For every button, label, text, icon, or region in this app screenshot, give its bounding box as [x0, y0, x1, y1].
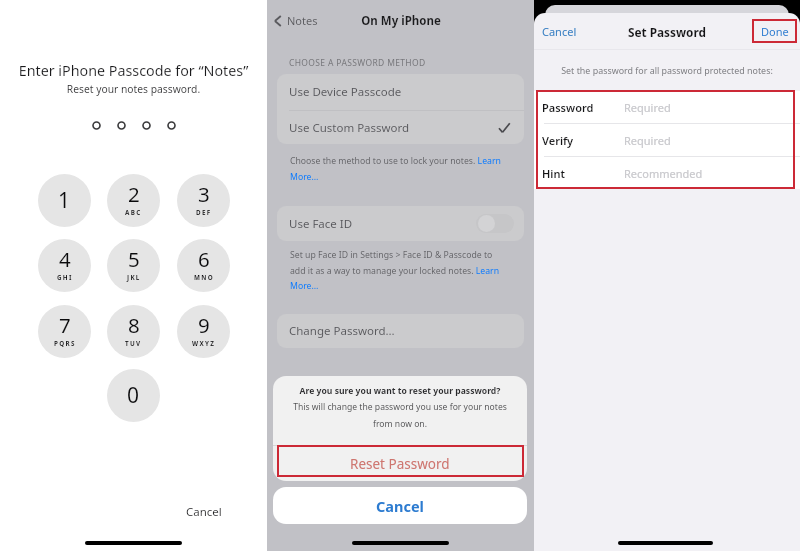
staticText: Set Password: [628, 24, 706, 40]
button[interactable]: Done: [759, 21, 791, 42]
button[interactable]: Verify: [534, 124, 800, 156]
staticText: Required: [624, 100, 671, 115]
staticText: Choose the method to use to lock your no…: [290, 155, 506, 183]
other: Selected: [498, 122, 510, 134]
button[interactable]: Use Face ID: [277, 206, 524, 241]
staticText: Enter iPhone Passcode for “Notes”: [0, 61, 267, 80]
button[interactable]: Cancel: [184, 502, 224, 522]
staticText: 3: [198, 180, 210, 208]
staticText: Cancel: [376, 496, 424, 516]
button[interactable]: Use Custom Password: [277, 111, 524, 144]
staticText: Set the password for all password protec…: [534, 64, 800, 76]
staticText: PQRS: [54, 339, 76, 348]
staticText: MNO: [194, 273, 214, 282]
staticText: 2: [128, 180, 140, 208]
button[interactable]: Change Password…: [277, 314, 524, 348]
button[interactable]: Cancel: [273, 487, 527, 524]
button[interactable]: 4: [38, 239, 91, 292]
staticText: Verify: [542, 133, 574, 148]
staticText: TUV: [125, 339, 142, 348]
button[interactable]: 2: [107, 174, 160, 227]
staticText: Use Custom Password: [289, 120, 410, 136]
button[interactable]: Cancel: [540, 21, 579, 42]
staticText: 6: [198, 245, 210, 273]
button[interactable]: Reset Password: [273, 446, 527, 481]
staticText: This will change the password you use fo…: [291, 401, 509, 429]
button[interactable]: Password: [534, 91, 800, 123]
staticText: 9: [198, 311, 210, 339]
staticText: Done: [761, 24, 789, 39]
staticText: Are you sure you want to reset your pass…: [281, 385, 519, 397]
button[interactable]: Use Device Passcode: [277, 74, 524, 110]
button[interactable]: 3: [177, 174, 230, 227]
staticText: Cancel: [186, 504, 222, 520]
staticText: 0: [127, 381, 140, 410]
button[interactable]: 0: [107, 369, 160, 422]
button[interactable]: Hint: [534, 157, 800, 189]
button[interactable]: 9: [177, 305, 230, 358]
staticText: JKL: [127, 273, 141, 282]
staticText: Reset your notes password.: [0, 82, 267, 96]
staticText: WXYZ: [192, 339, 216, 348]
staticText: Required: [624, 133, 671, 148]
staticText: Hint: [542, 166, 565, 181]
staticText: ABC: [125, 208, 142, 217]
button[interactable]: 1: [38, 174, 91, 227]
staticText: Change Password…: [289, 323, 395, 339]
staticText: 4: [59, 245, 71, 273]
staticText: Use Device Passcode: [289, 84, 402, 100]
button[interactable]: 7: [38, 305, 91, 358]
staticText: GHI: [57, 273, 73, 282]
staticText: 7: [59, 311, 71, 339]
staticText: Cancel: [542, 24, 577, 39]
button[interactable]: Notes: [271, 13, 318, 28]
button[interactable]: 6: [177, 239, 230, 292]
staticText: Reset Password: [350, 455, 450, 473]
staticText: Notes: [287, 13, 318, 28]
staticText: 5: [128, 245, 140, 273]
staticText: DEF: [196, 208, 212, 217]
staticText: Password: [542, 100, 594, 115]
staticText: CHOOSE A PASSWORD METHOD: [289, 57, 426, 69]
button[interactable]: 8: [107, 305, 160, 358]
staticText: On My iPhone: [361, 13, 441, 29]
staticText: Recommended: [624, 166, 703, 181]
staticText: Use Face ID: [289, 216, 353, 232]
staticText: 1: [58, 186, 71, 215]
button[interactable]: 5: [107, 239, 160, 292]
staticText: 8: [128, 311, 140, 339]
staticText: Set up Face ID in Settings > Face ID & P…: [290, 249, 506, 292]
